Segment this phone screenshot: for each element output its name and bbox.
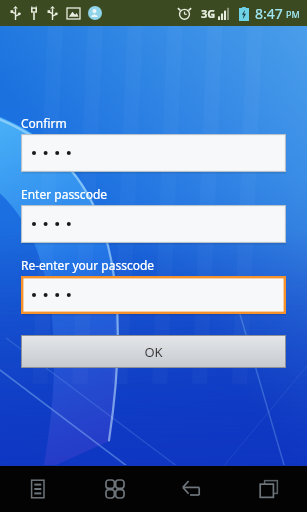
staticText: 3G — [201, 6, 216, 21]
staticText: OK — [144, 343, 163, 361]
button[interactable]: OK — [21, 335, 286, 368]
button[interactable] — [21, 276, 286, 314]
staticText: Enter passcode — [21, 186, 108, 202]
button[interactable]: Back — [153, 466, 230, 512]
button[interactable] — [21, 205, 286, 243]
staticText: 8:47 — [255, 4, 283, 23]
button[interactable]: Menu — [0, 466, 76, 512]
button[interactable] — [21, 134, 286, 172]
staticText: Confirm — [21, 115, 67, 131]
button[interactable]: Recent — [230, 466, 307, 512]
staticText: Re-enter your passcode — [21, 257, 155, 273]
staticText: PM — [286, 8, 300, 20]
button[interactable]: Home — [76, 466, 153, 512]
